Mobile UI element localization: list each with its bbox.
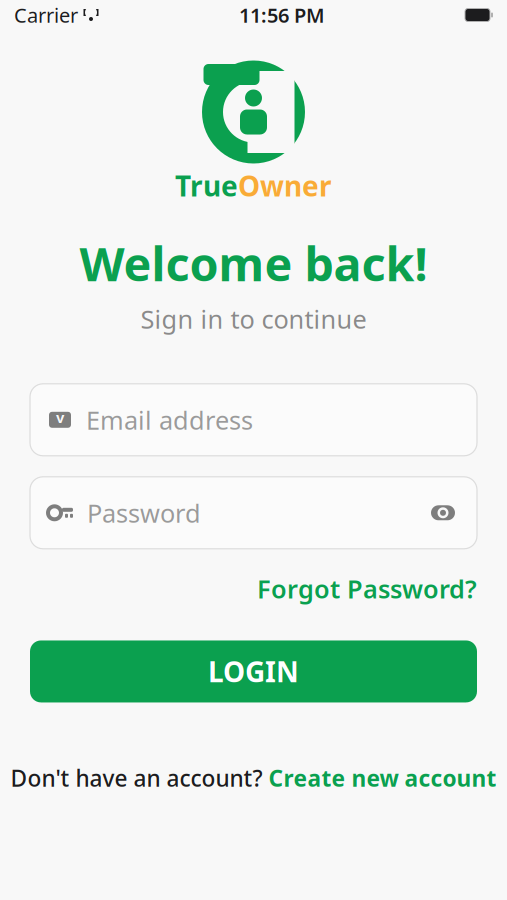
staticText: Password bbox=[87, 496, 201, 530]
staticText: v bbox=[56, 408, 64, 427]
staticText: Create new account bbox=[268, 763, 496, 793]
staticText: Welcome back! bbox=[79, 232, 427, 294]
button[interactable]: Forgot Password? bbox=[257, 566, 477, 611]
staticText: Don't have an account? bbox=[10, 763, 262, 793]
staticText: Carrier bbox=[14, 2, 78, 28]
button[interactable]: LOGIN bbox=[30, 640, 477, 702]
staticText: Email address bbox=[86, 403, 253, 437]
staticText: Forgot Password? bbox=[257, 572, 477, 605]
staticText: True bbox=[175, 167, 238, 204]
staticText: Owner bbox=[238, 167, 332, 204]
button[interactable]: Show password bbox=[427, 501, 459, 525]
staticText: 11:56 PM bbox=[239, 2, 325, 28]
button[interactable]: Create new account bbox=[268, 763, 496, 793]
staticText: Sign in to continue bbox=[140, 302, 366, 336]
staticText: LOGIN bbox=[208, 653, 299, 690]
